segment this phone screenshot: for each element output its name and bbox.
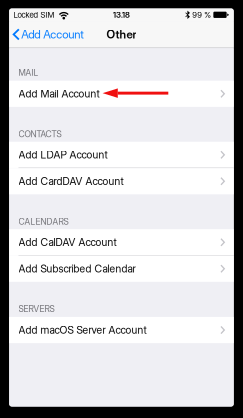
button[interactable]: Add Subscribed Calendar [9,256,234,282]
staticText: MAIL [18,68,38,78]
button[interactable]: Add Account [9,21,90,48]
staticText: Add CardDAV Account [18,175,123,188]
staticText: Add Account [21,27,84,41]
button[interactable]: Add LDAP Account [9,142,234,168]
staticText: 13.18 [113,10,130,20]
button[interactable]: Add macOS Server Account [9,317,234,343]
staticText: Add Subscribed Calendar [18,262,135,275]
button[interactable]: Add CalDAV Account [9,229,234,255]
staticText: CALENDARS [18,216,68,227]
staticText: CONTACTS [18,129,61,139]
staticText: Add macOS Server Account [18,324,146,336]
staticText: Add LDAP Account [18,148,107,161]
staticText: Locked SIM [13,10,54,20]
button[interactable]: Add CardDAV Account [9,168,234,194]
staticText: Add Mail Account [18,87,99,100]
staticText: Other [106,27,136,41]
staticText: SERVERS [18,304,54,314]
button[interactable]: Add Mail Account [9,81,234,107]
staticText: 99 % [192,10,211,20]
staticText: Add CalDAV Account [18,236,116,249]
